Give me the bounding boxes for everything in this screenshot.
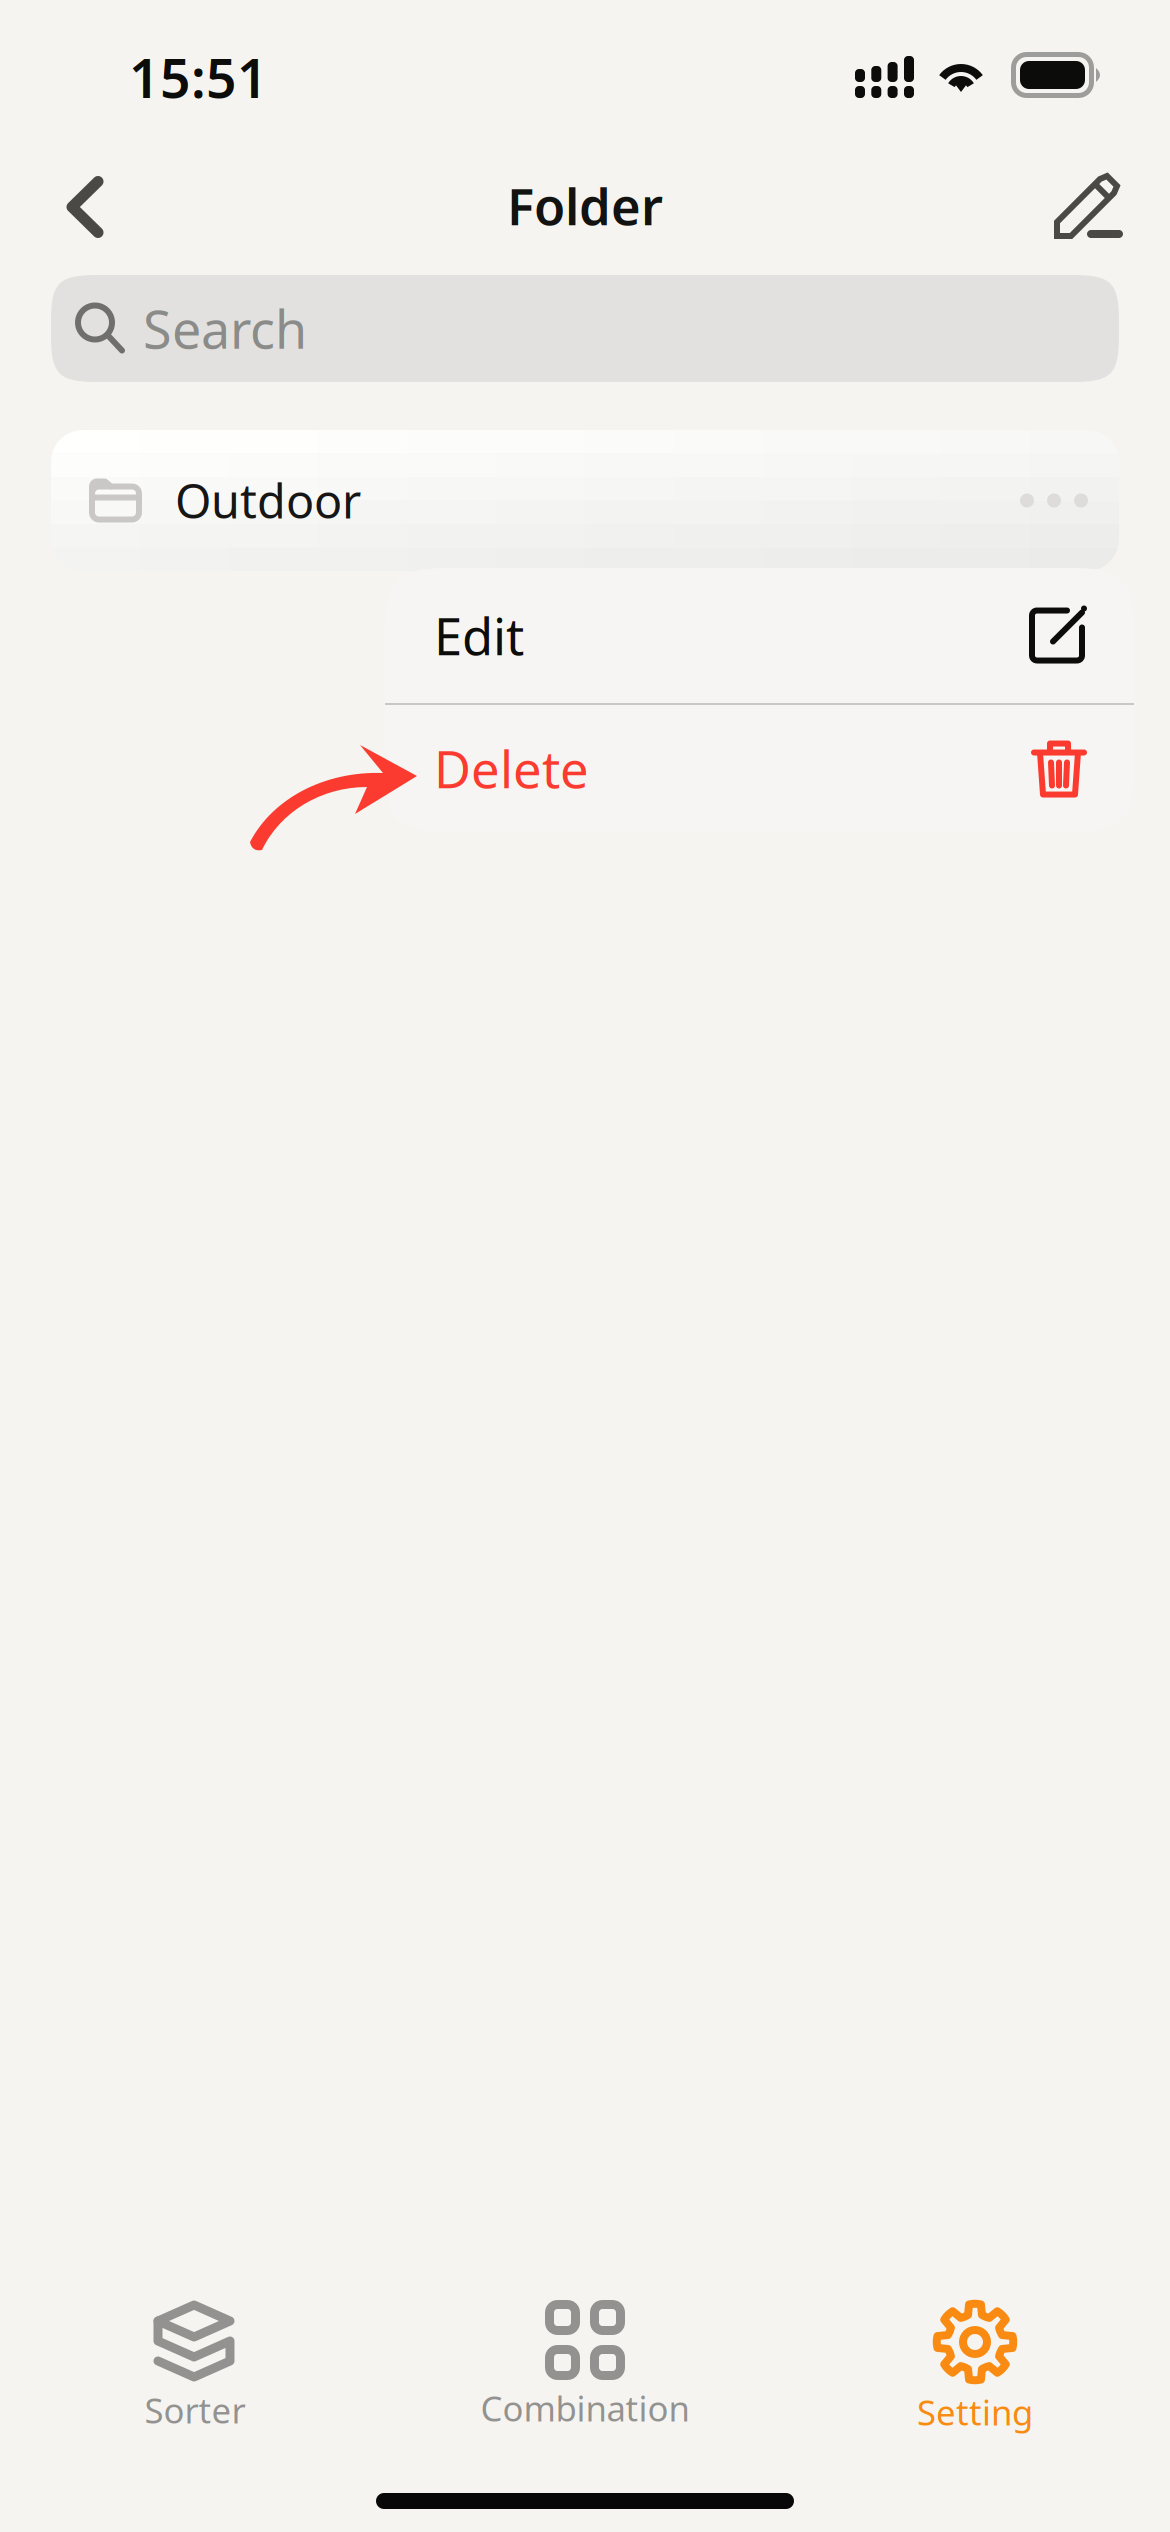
button[interactable]: Search [51,275,1119,382]
staticText: Edit [434,602,524,669]
staticText: Sorter [144,2387,245,2433]
staticText: Combination [480,2385,689,2431]
button[interactable]: Sorter [0,2300,390,2445]
button[interactable]: Delete [385,705,1134,832]
button[interactable]: Setting [780,2300,1170,2445]
button[interactable]: Combination [390,2300,780,2445]
button[interactable]: Back [25,147,145,267]
staticText: Outdoor [175,469,361,531]
staticText: Folder [507,172,663,239]
staticText: Setting [917,2389,1033,2435]
button[interactable]: Edit [385,568,1134,703]
staticText: 15:51 [129,42,268,113]
staticText: Delete [434,735,589,802]
button[interactable]: Edit [1028,147,1148,267]
staticText: Search [143,294,307,363]
button[interactable]: Outdoor [51,430,1119,571]
